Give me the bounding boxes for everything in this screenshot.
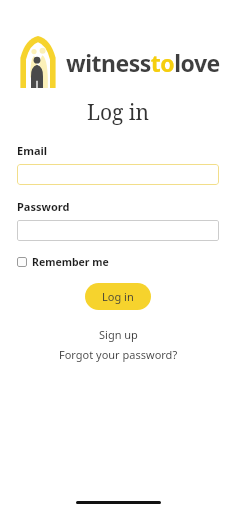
- staticText: witnesstolove: [66, 47, 220, 78]
- staticText: Email: [17, 143, 48, 158]
- button[interactable]: Log in: [85, 283, 151, 310]
- staticText: Password: [17, 199, 70, 214]
- staticText: Forgot your password?: [59, 347, 178, 362]
- staticText: Log in: [0, 98, 236, 127]
- button[interactable]: Forgot your password?: [53, 346, 184, 363]
- button[interactable]: Sign up: [93, 326, 144, 343]
- staticText: Remember me: [32, 255, 109, 269]
- button[interactable]: [17, 220, 219, 241]
- other: Witness to Love logo: [18, 36, 58, 88]
- staticText: Sign up: [99, 327, 138, 342]
- button[interactable]: [17, 164, 219, 185]
- button[interactable]: Remember me: [15, 253, 111, 271]
- staticText: Log in: [102, 289, 134, 304]
